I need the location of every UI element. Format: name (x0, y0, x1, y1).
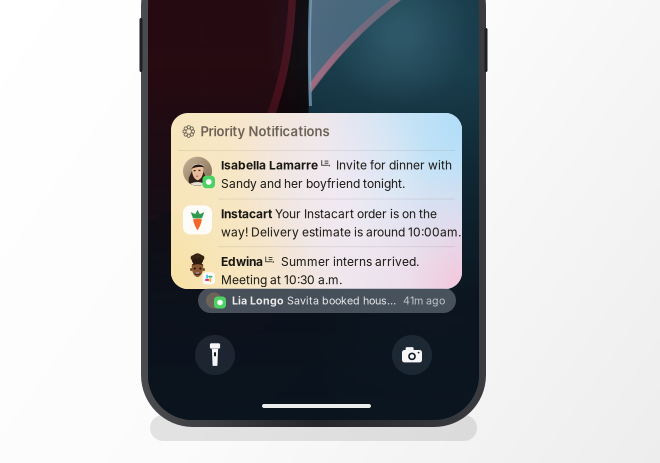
staticText: Priority Notifications (200, 124, 329, 139)
button[interactable]: Flashlight (195, 335, 235, 375)
button[interactable]: Camera (392, 335, 432, 375)
staticText: Edwina Summer interns arrived. Meeting a… (221, 254, 419, 287)
button[interactable]: Isabella Lamarre Invite for dinner with … (171, 151, 462, 199)
button[interactable]: Edwina Summer interns arrived. Meeting a… (171, 247, 462, 290)
staticText: Lia Longo Savita booked house… (232, 294, 397, 307)
staticText: 41m ago (403, 294, 445, 307)
button[interactable]: Priority Notifications (171, 113, 462, 150)
staticText: Instacart Your Instacart order is on the… (221, 207, 461, 239)
button[interactable]: Lia Longo Savita booked house… (198, 288, 456, 313)
button[interactable]: Instacart Your Instacart order is on the… (171, 199, 462, 246)
staticText: Isabella Lamarre Invite for dinner with … (221, 158, 452, 191)
